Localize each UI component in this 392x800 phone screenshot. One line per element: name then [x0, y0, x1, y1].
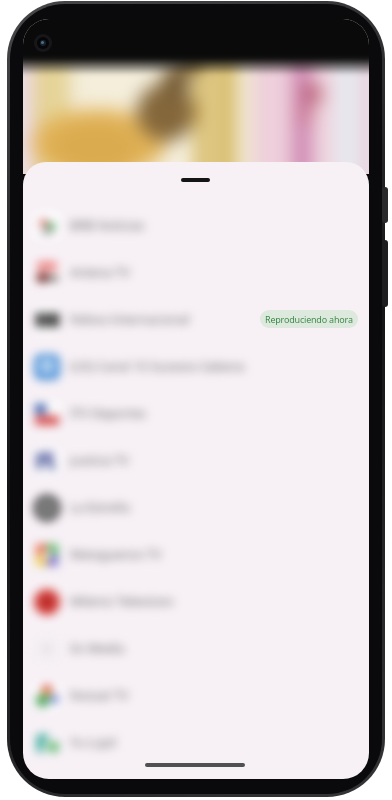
button[interactable]: Milenio Television: [23, 578, 369, 625]
staticText: La Estrella: [70, 499, 130, 516]
button[interactable]: Sn Media: [23, 625, 369, 672]
staticText: ITV Deportes: [70, 405, 147, 422]
button[interactable]: Mataguenos TV: [23, 531, 369, 578]
staticText: (US) Canal 10 Sucesos Sabena: [70, 358, 245, 375]
button[interactable]: Justicia TV: [23, 437, 369, 484]
staticText: Mataguenos TV: [70, 546, 162, 563]
staticText: Reproduciendo ahora: [265, 313, 353, 325]
button[interactable]: Nossat TV: [23, 672, 369, 719]
button[interactable]: BRB Noticias: [23, 202, 369, 249]
staticText: Justicia TV: [70, 452, 129, 469]
staticText: Sn Media: [70, 640, 125, 657]
staticText: Yu Lujol: [70, 734, 116, 751]
button[interactable]: Yu Lujol: [23, 719, 369, 766]
staticText: Nossat TV: [70, 687, 129, 704]
staticText: BRB Noticias: [70, 217, 145, 234]
button[interactable]: Antena TV: [23, 249, 369, 296]
button[interactable]: (US) Canal 10 Sucesos Sabena: [23, 343, 369, 390]
button[interactable]: ITV Deportes: [23, 390, 369, 437]
button[interactable]: Ndova Internacional: [23, 296, 369, 343]
staticText: Ndova Internacional: [70, 311, 190, 328]
button[interactable]: Reproduciendo ahora: [260, 310, 358, 328]
staticText: Milenio Television: [70, 593, 174, 610]
staticText: Antena TV: [70, 264, 130, 281]
button[interactable]: La Estrella: [23, 484, 369, 531]
